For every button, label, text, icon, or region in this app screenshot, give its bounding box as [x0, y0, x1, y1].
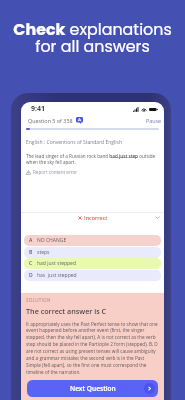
button[interactable]: B [24, 247, 161, 258]
staticText: Next Question [70, 384, 116, 393]
staticText: has just stepped [37, 272, 77, 279]
staticText: The lead singer of a Russian rock band h… [26, 153, 159, 166]
staticText: D [29, 272, 33, 279]
button[interactable]: Pause [146, 117, 162, 124]
staticText: C [29, 260, 33, 267]
staticText: A [29, 237, 33, 244]
staticText: It appropriately uses the Past Perfect t… [26, 321, 159, 376]
button[interactable]: Report content error [26, 169, 78, 175]
staticText: Check explanations for all answers [13, 18, 172, 57]
staticText: steps [37, 249, 50, 256]
staticText: SOLUTION [26, 297, 51, 303]
button[interactable]: Explanation [76, 117, 83, 124]
staticText: 9:41 [31, 104, 45, 114]
staticText: B [29, 249, 33, 256]
button[interactable]: Next Question [27, 380, 158, 397]
staticText: NO CHANGE [37, 237, 67, 244]
staticText: had just stepped [37, 260, 76, 267]
staticText: Incorrect [84, 214, 108, 221]
other: Next question [144, 383, 155, 394]
button[interactable]: A [24, 235, 161, 246]
staticText: The correct answer is C [26, 306, 107, 316]
staticText: Report content error [33, 169, 78, 175]
staticText: English : Conventions of Standard Englis… [26, 139, 123, 146]
staticText: Question 5 of 358 [28, 117, 73, 124]
button[interactable]: Incorrect [21, 212, 164, 223]
button[interactable]: D [24, 270, 161, 281]
button[interactable]: C [24, 258, 161, 269]
